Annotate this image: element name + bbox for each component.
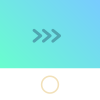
- button[interactable]: Continue: [42, 76, 58, 93]
- button[interactable]: Swipe to continue: [28, 24, 65, 47]
